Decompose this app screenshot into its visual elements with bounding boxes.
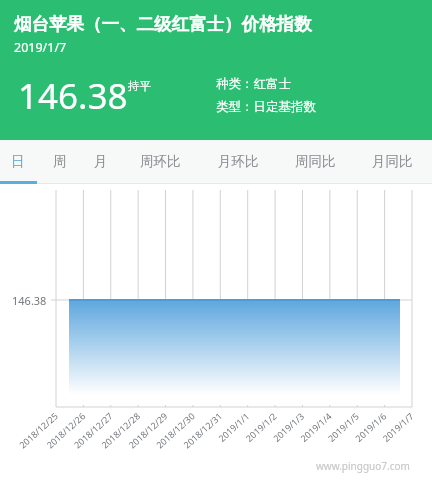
staticText: 烟台苹果（一、二级红富士）价格指数 — [14, 13, 312, 35]
staticText: 月环比 — [218, 153, 259, 170]
staticText: 种类：红富士 — [216, 76, 291, 92]
staticText: 月同比 — [372, 153, 413, 170]
staticText: 周环比 — [140, 153, 181, 170]
button[interactable]: 月同比 — [365, 140, 419, 183]
staticText: 周同比 — [295, 153, 336, 170]
staticText: 146.38 — [18, 72, 128, 120]
staticText: 持平 — [128, 79, 151, 93]
staticText: 周 — [53, 153, 67, 170]
staticText: 日 — [11, 153, 25, 170]
staticText: 月 — [94, 153, 108, 170]
button[interactable]: 周环比 — [133, 140, 187, 183]
button[interactable]: 周同比 — [288, 140, 342, 183]
staticText: 2019/1/7 — [14, 39, 67, 56]
staticText: 类型：日定基指数 — [216, 99, 316, 115]
button[interactable]: 日 — [4, 140, 32, 183]
button[interactable]: 月 — [87, 140, 115, 183]
button[interactable]: 月环比 — [211, 140, 265, 183]
button[interactable]: 周 — [46, 140, 74, 183]
